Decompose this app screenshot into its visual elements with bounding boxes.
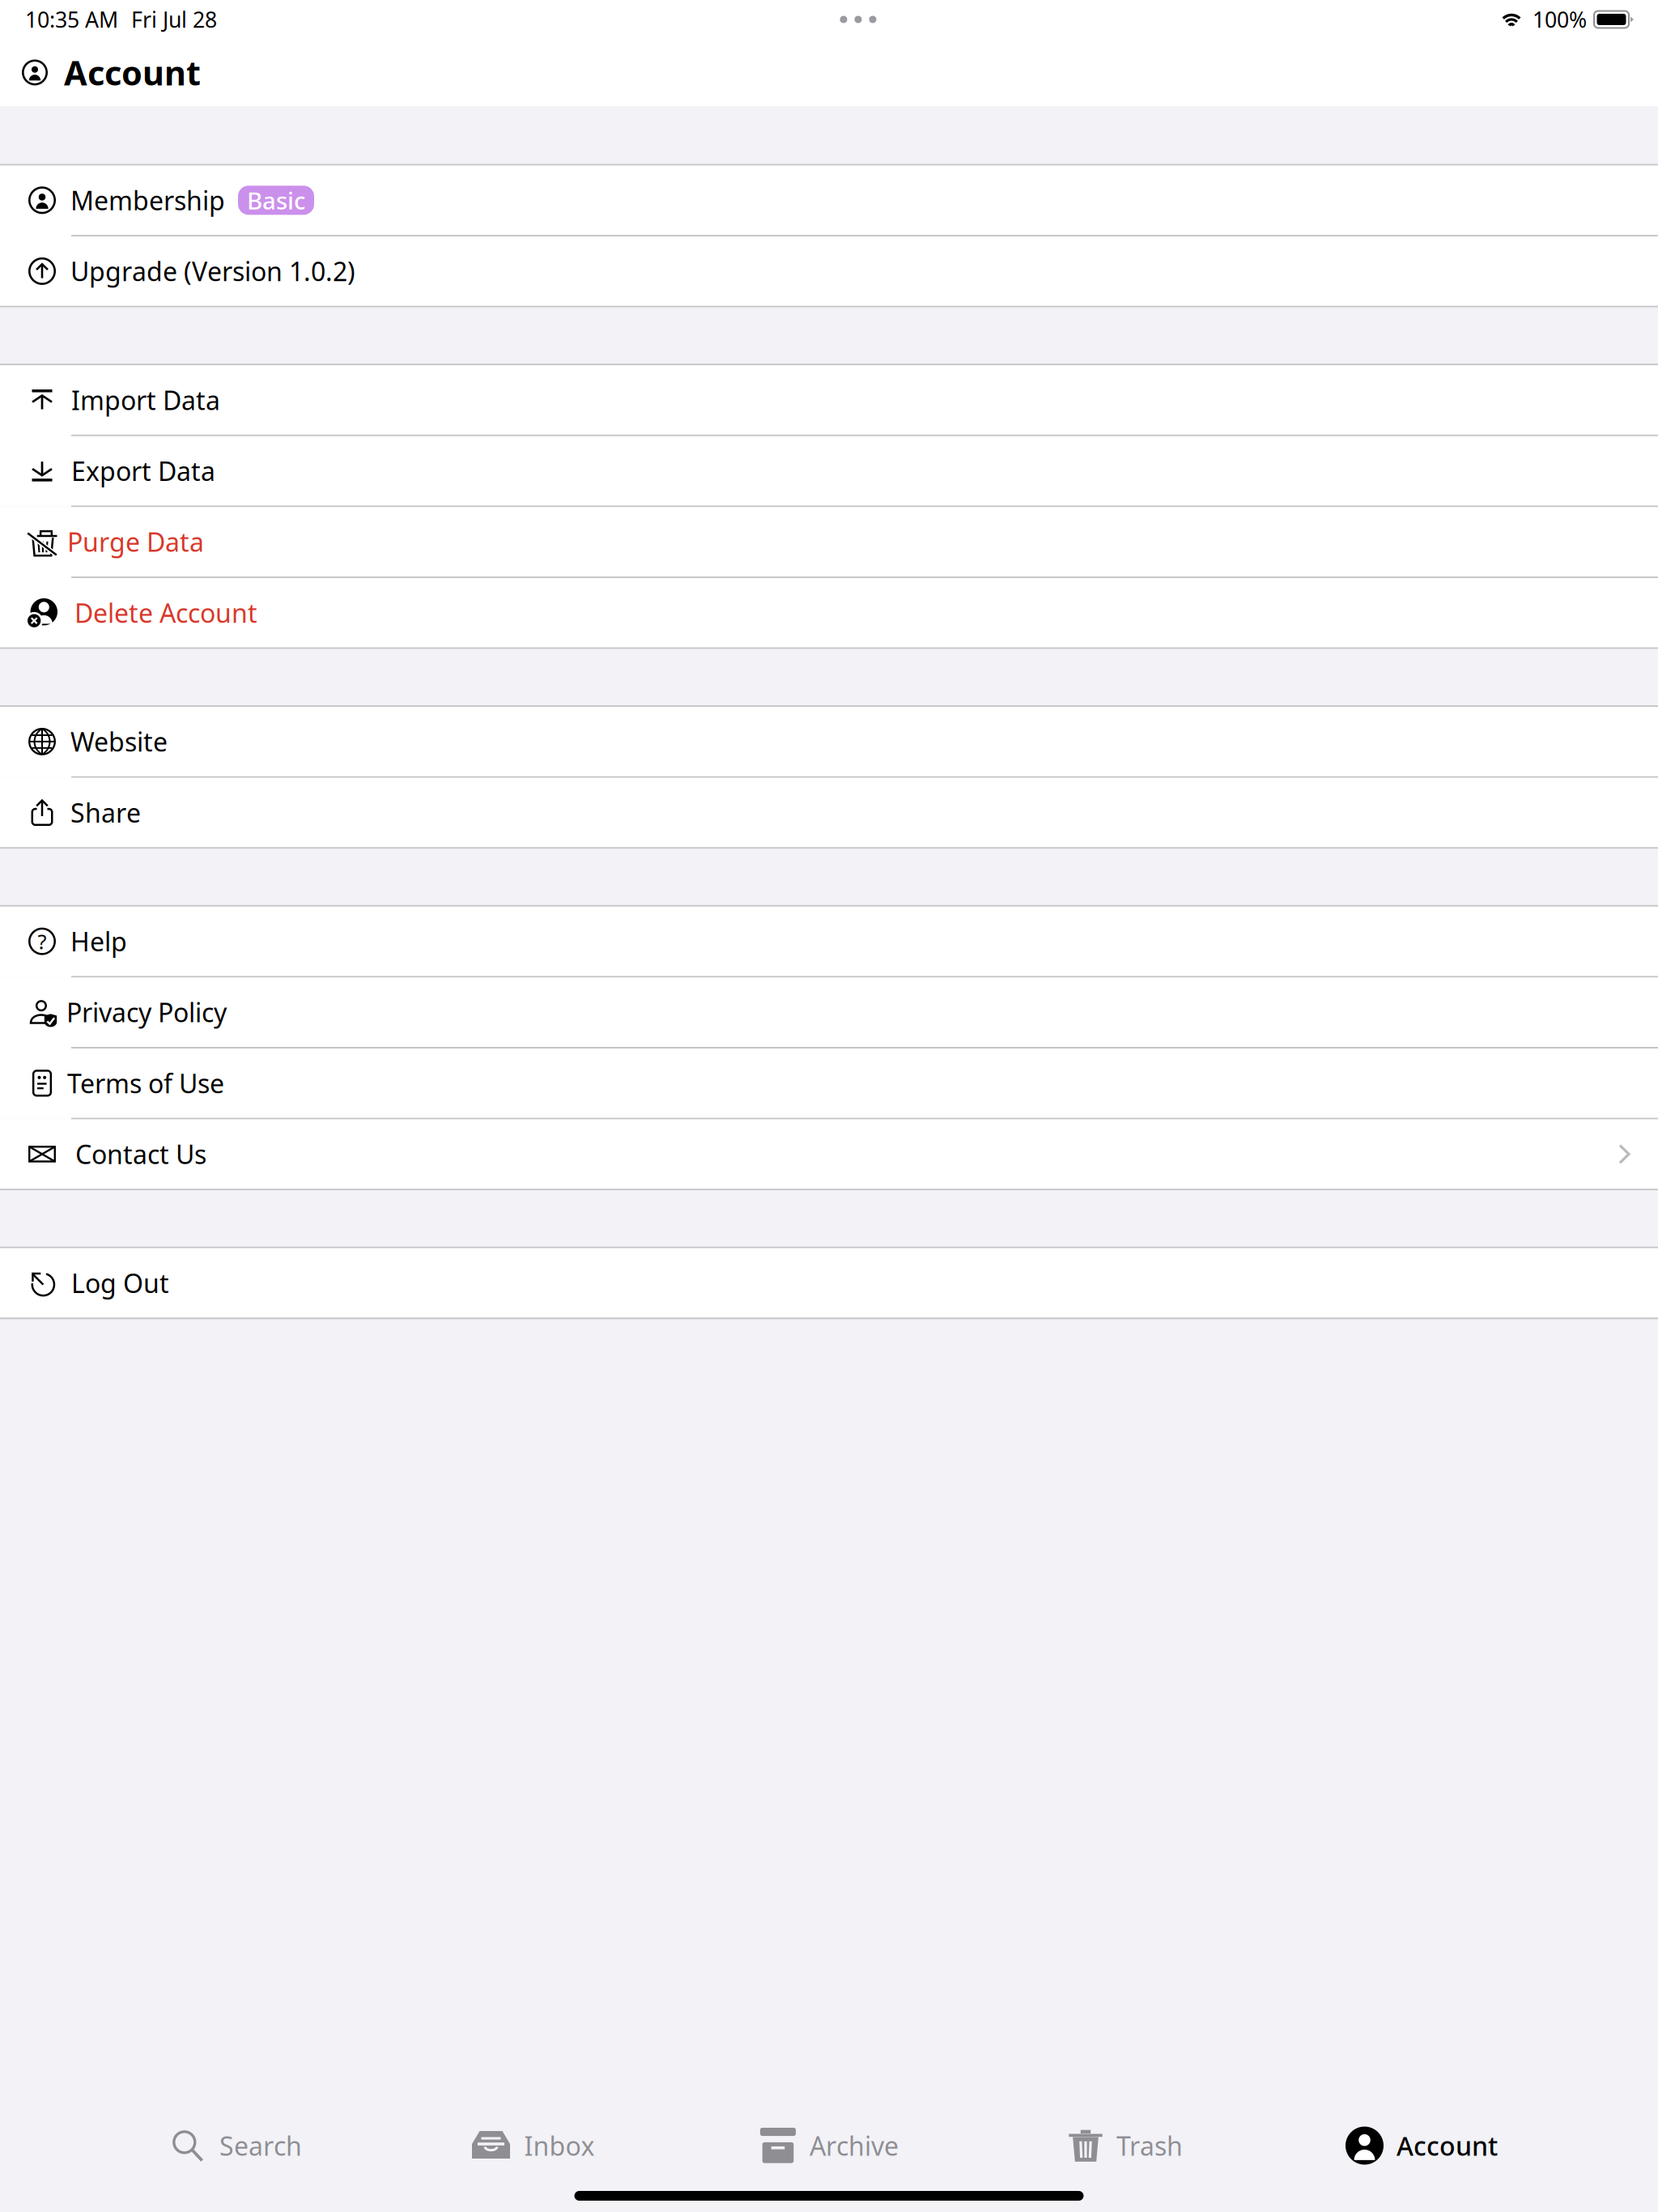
button[interactable]: Log Out [0,1248,1658,1318]
button[interactable]: ? [0,907,1658,976]
staticText: Membership [70,183,225,217]
staticText: 100% [1533,5,1587,34]
button[interactable]: Account [1273,2105,1570,2186]
button[interactable]: Terms of Use [0,1049,1658,1118]
button[interactable]: Trash [977,2105,1273,2186]
staticText: Export Data [71,454,215,488]
staticText: Share [70,795,141,830]
staticText: ? [38,928,47,955]
staticText: Search [219,2128,302,2163]
staticText: Privacy Policy [66,995,227,1029]
staticText: Terms of Use [67,1066,224,1100]
staticText: Help [70,924,127,959]
staticText: Inbox [524,2128,595,2163]
staticText: Log Out [71,1266,169,1300]
staticText: Account [64,50,201,95]
staticText: Delete Account [74,596,257,630]
button[interactable]: Share [0,778,1658,847]
button[interactable]: Archive [681,2105,977,2186]
staticText: Purge Data [67,525,204,559]
button[interactable]: Export Data [0,436,1658,506]
staticText: Website [70,724,168,759]
button[interactable]: Search [88,2105,385,2186]
staticText: Trash [1116,2128,1183,2163]
staticText: Basic [247,184,305,216]
button[interactable]: Purge Data [0,507,1658,576]
button[interactable]: Contact Us [0,1119,1658,1189]
button[interactable]: Website [0,707,1658,776]
button[interactable]: Inbox [385,2105,681,2186]
staticText: Import Data [71,383,220,417]
button[interactable]: Import Data [0,365,1658,435]
staticText: Account [1397,2128,1498,2163]
staticText: Upgrade (Version 1.0.2) [70,254,355,288]
staticText: Contact Us [75,1137,206,1171]
staticText: Fri Jul 28 [131,5,217,34]
button[interactable]: Upgrade (Version 1.0.2) [0,237,1658,306]
button[interactable]: Privacy Policy [0,978,1658,1047]
button[interactable]: Delete Account [0,578,1658,647]
staticText: Archive [810,2128,899,2163]
staticText: 10:35 AM [25,5,118,34]
button[interactable]: Membership [0,166,1658,235]
